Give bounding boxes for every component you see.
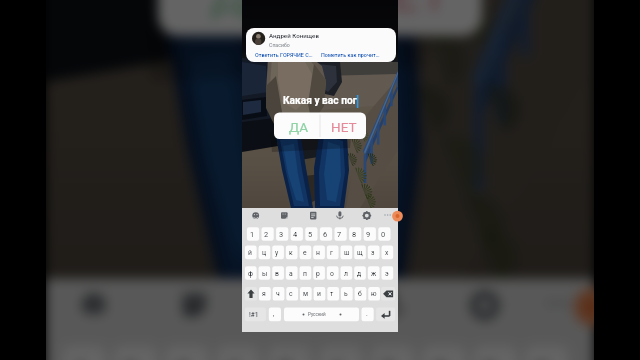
button[interactable]: Enter (376, 308, 395, 322)
staticText: н (316, 249, 320, 257)
staticText: ц (262, 249, 267, 257)
staticText: л (344, 270, 348, 278)
staticText: Ответить ГОРЯЧИЕ С… (255, 52, 313, 58)
staticText: 1 (250, 230, 255, 239)
staticText: 3 (279, 230, 284, 239)
staticText: ДА (289, 119, 309, 135)
staticText: о (330, 270, 334, 278)
staticText: с (289, 290, 293, 298)
staticText: ч (276, 290, 280, 298)
staticText: ф (248, 270, 253, 278)
staticText: НЕТ (359, 0, 450, 22)
staticText: , (273, 310, 275, 318)
staticText: Русский (308, 312, 326, 317)
staticText: я (262, 290, 266, 298)
button[interactable]: Settings (461, 279, 510, 324)
staticText: 7 (337, 230, 342, 239)
button[interactable]: Voice input (333, 208, 347, 221)
staticText: НЕТ (331, 119, 357, 135)
staticText: ю (371, 290, 377, 298)
staticText: и (317, 290, 321, 298)
button[interactable] (158, 0, 320, 36)
staticText: ж (371, 270, 377, 278)
staticText: 0 (381, 230, 386, 239)
staticText: б (358, 290, 362, 298)
button[interactable]: Emoji (77, 279, 126, 324)
staticText: з (371, 249, 375, 257)
staticText: Пометить как прочит… (321, 52, 380, 58)
staticText: м (303, 290, 309, 298)
staticText: х (385, 249, 389, 257)
staticText: в (275, 270, 279, 278)
button[interactable] (274, 113, 320, 139)
staticText: Андрей Конищев (269, 32, 319, 39)
button[interactable]: Emoji (251, 208, 265, 221)
staticText: т (330, 290, 334, 298)
button[interactable]: Space (284, 308, 359, 322)
staticText: д (357, 270, 362, 278)
staticText: г (330, 249, 333, 257)
staticText: у (275, 249, 279, 257)
staticText: 6 (323, 230, 328, 239)
staticText: п (303, 270, 307, 278)
button[interactable]: Voice input (366, 279, 415, 324)
staticText: ы (262, 270, 268, 278)
staticText: щ (357, 249, 363, 257)
button[interactable]: Settings (360, 208, 374, 221)
button[interactable] (320, 113, 366, 139)
button[interactable] (320, 0, 482, 36)
button[interactable]: Backspace (381, 287, 395, 301)
staticText: Какая у вас пог (283, 95, 357, 107)
staticText: Спасибо (269, 42, 290, 48)
staticText: 2 (264, 230, 269, 239)
staticText: 4 (293, 230, 298, 239)
staticText: 8 (352, 230, 357, 239)
staticText: э (385, 270, 389, 278)
staticText: !#1 (249, 311, 259, 319)
staticText: . (366, 310, 368, 318)
staticText: 5 (308, 230, 313, 239)
staticText: 9 (366, 230, 371, 239)
button[interactable]: Shift (245, 287, 257, 301)
staticText: ь (344, 290, 348, 298)
staticText: ДА (211, 0, 281, 22)
staticText: р (316, 270, 320, 278)
staticText: ш (344, 249, 350, 257)
staticText: а (289, 270, 293, 278)
staticText: к (289, 249, 293, 257)
staticText: й (248, 249, 252, 257)
staticText: е (303, 249, 307, 257)
button[interactable] (246, 28, 396, 62)
